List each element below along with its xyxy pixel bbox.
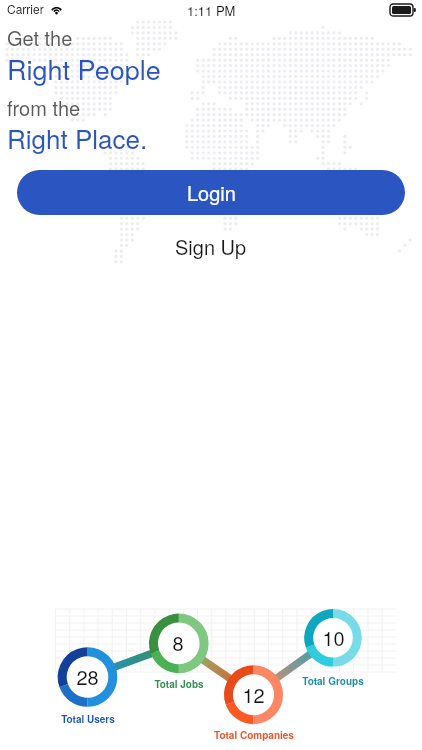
staticText: 10 — [322, 623, 345, 649]
staticText: Right Place. — [7, 119, 148, 156]
button[interactable]: Sign Up — [0, 231, 422, 261]
staticText: Total Jobs — [154, 677, 204, 691]
staticText: 28 — [76, 662, 99, 688]
staticText: Total Companies — [214, 728, 294, 742]
staticText: Total Users — [61, 712, 115, 726]
staticText: Login — [187, 178, 236, 207]
staticText: 1:11 PM — [187, 1, 236, 20]
staticText: Carrier — [7, 0, 44, 17]
staticText: Right People — [7, 49, 161, 88]
staticText: 12 — [242, 680, 265, 706]
staticText: 8 — [172, 628, 184, 654]
staticText: Sign Up — [175, 232, 247, 261]
staticText: from the — [7, 93, 81, 122]
staticText: Total Groups — [302, 674, 364, 688]
staticText: Get the — [7, 23, 73, 52]
button[interactable]: Login — [17, 170, 405, 215]
